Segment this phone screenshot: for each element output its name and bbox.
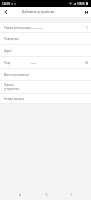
button[interactable]: Save [81,7,91,17]
button[interactable]: Back [0,7,12,17]
staticText: Добавить устройство [22,10,55,14]
button[interactable]: Режим регистрации [0,23,91,32]
staticText: Номер камеры [4,97,25,101]
button[interactable]: Home [40,189,52,200]
staticText: Имя пользователя [4,73,29,77]
staticText: 14:38 [2,2,10,6]
staticText: 9000 [31,61,37,64]
button[interactable]: Back [65,189,77,200]
button[interactable]: Поведение [0,33,91,44]
staticText: Порт [4,61,11,65]
button[interactable]: Пароль устройства [0,81,91,93]
button[interactable]: Адрес [0,45,91,56]
staticText: 100% [77,2,85,6]
button[interactable]: Recent apps [14,189,26,200]
staticText: Поведение [4,37,19,41]
button[interactable]: Имя пользователя [0,69,91,80]
button[interactable]: Номер камеры [0,94,91,103]
staticText: Адрес [4,49,12,53]
staticText: Пароль устройства [4,83,19,91]
button[interactable]: Clear [85,61,88,64]
button[interactable]: Порт [0,57,91,68]
staticText: Режим регистрации [4,26,31,30]
staticText: IP/Domain [31,26,44,29]
